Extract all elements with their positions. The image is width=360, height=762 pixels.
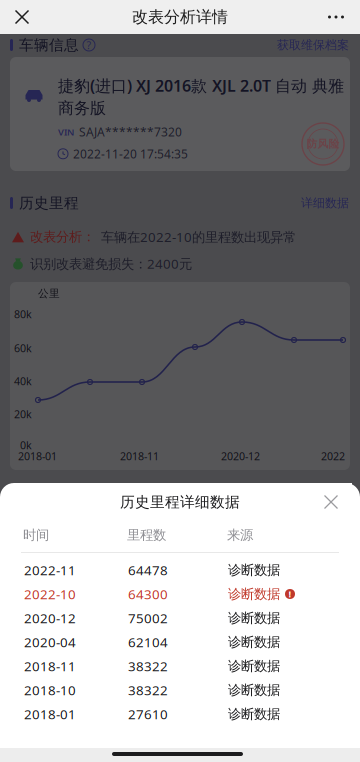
staticText: 诊断数据 [228, 682, 280, 698]
staticText: 来源 [227, 527, 253, 543]
button[interactable]: Close [310, 483, 352, 521]
button[interactable]: 获取维保档案 [277, 36, 360, 54]
staticText: 商务版 [58, 98, 106, 118]
staticText: 防风险 [306, 137, 339, 150]
staticText: 识别改表避免损失：2400元 [30, 255, 192, 272]
staticText: ! [288, 588, 291, 600]
staticText: 40k [14, 374, 32, 388]
staticText: 2022-11-20 17:54:35 [73, 146, 188, 162]
staticText: VIN [58, 126, 74, 138]
staticText: 2022-11 [24, 561, 76, 579]
button[interactable]: Close [0, 0, 44, 34]
staticText: 公里 [38, 287, 60, 300]
staticText: 2022 [321, 449, 345, 463]
staticText: 38322 [128, 681, 168, 699]
staticText: 诊断数据 [228, 586, 280, 602]
button[interactable]: 详细数据 [301, 194, 360, 212]
staticText: 车辆信息 [19, 36, 79, 54]
staticText: 改表分析： [30, 229, 95, 245]
staticText: 2020-12 [221, 449, 260, 463]
staticText: 80k [14, 307, 32, 321]
staticText: 2018-10 [24, 681, 76, 699]
staticText: SAJA*******7320 [79, 124, 182, 140]
staticText: 诊断数据 [228, 562, 280, 578]
staticText: 改表分析详情 [132, 7, 228, 27]
staticText: 获取维保档案 [277, 38, 349, 52]
staticText: 车辆在2022-10的里程数出现异常 [101, 228, 296, 246]
staticText: 2018-01 [24, 705, 76, 723]
staticText: 64300 [128, 585, 168, 603]
staticText: 75002 [128, 609, 168, 627]
staticText: 38322 [128, 657, 168, 675]
staticText: 诊断数据 [228, 610, 280, 626]
staticText: 62104 [128, 633, 168, 651]
staticText: 27610 [128, 705, 168, 723]
staticText: 2018-11 [24, 657, 76, 675]
staticText: 2018-11 [120, 449, 159, 463]
staticText: 0k [20, 438, 32, 452]
staticText: 历史里程详细数据 [120, 493, 240, 511]
staticText: 2020-04 [24, 633, 76, 651]
staticText: 2022-10 [24, 585, 76, 603]
staticText: ? [86, 38, 91, 52]
staticText: 2018-01 [18, 449, 57, 463]
staticText: 64478 [128, 561, 168, 579]
staticText: 20k [14, 407, 32, 421]
staticText: 历史里程 [19, 194, 79, 212]
staticText: 诊断数据 [228, 706, 280, 722]
staticText: 详细数据 [301, 196, 349, 210]
button[interactable]: More options [314, 0, 358, 34]
staticText: 诊断数据 [228, 658, 280, 674]
staticText: 2020-12 [24, 609, 76, 627]
staticText: 里程数 [127, 527, 166, 543]
staticText: 60k [14, 341, 32, 355]
staticText: 诊断数据 [228, 634, 280, 650]
staticText: 时间 [23, 527, 49, 543]
staticText: 捷豹(进口) XJ 2016款 XJL 2.0T 自动 典雅 [58, 75, 344, 96]
